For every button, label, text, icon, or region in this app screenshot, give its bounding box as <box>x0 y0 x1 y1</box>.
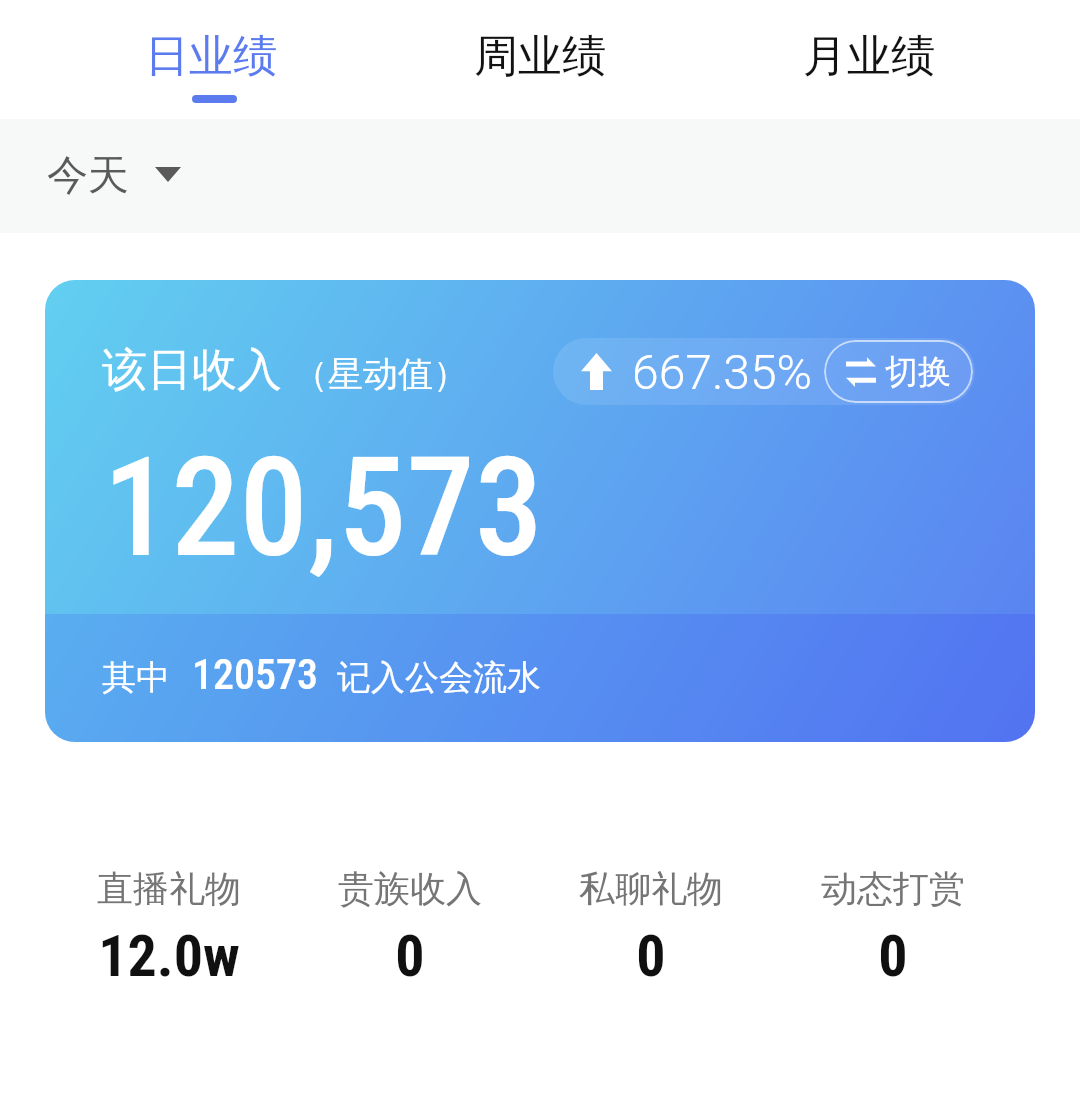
button[interactable]: 贵族收入 <box>289 866 530 990</box>
staticText: 0 <box>878 922 908 990</box>
button[interactable]: 切换 <box>824 340 973 403</box>
staticText: 120,573 <box>103 428 543 588</box>
button[interactable]: 月业绩 <box>704 0 1033 95</box>
staticText: 私聊礼物 <box>579 866 723 911</box>
staticText: 月业绩 <box>803 29 935 84</box>
staticText: 切换 <box>885 351 951 393</box>
staticText: 该日收入 <box>102 342 282 399</box>
staticText: 今天 <box>47 150 129 202</box>
staticText: 0 <box>395 922 425 990</box>
button[interactable]: 该日收入 <box>45 280 1035 742</box>
button[interactable]: 日业绩 <box>47 0 375 103</box>
button[interactable]: 私聊礼物 <box>530 866 772 990</box>
button[interactable]: 周业绩 <box>375 0 704 95</box>
staticText: 日业绩 <box>145 29 277 84</box>
button[interactable]: 直播礼物 <box>48 866 289 990</box>
staticText: 0 <box>636 922 666 990</box>
staticText: 动态打赏 <box>821 866 965 911</box>
staticText: 贵族收入 <box>338 866 482 911</box>
button[interactable]: 动态打赏 <box>772 866 1014 990</box>
other: Increase <box>581 353 612 390</box>
button[interactable]: 今天 <box>34 140 197 212</box>
staticText: 12.0w <box>98 922 240 990</box>
staticText: 667.35% <box>632 344 813 400</box>
staticText: 120573 <box>192 650 318 699</box>
staticText: 其中 <box>102 656 170 699</box>
staticText: 记入公会流水 <box>337 656 541 699</box>
staticText: 周业绩 <box>474 29 606 84</box>
staticText: 直播礼物 <box>97 866 241 911</box>
staticText: （星动值） <box>293 352 468 396</box>
button[interactable]: Increase <box>553 338 975 405</box>
